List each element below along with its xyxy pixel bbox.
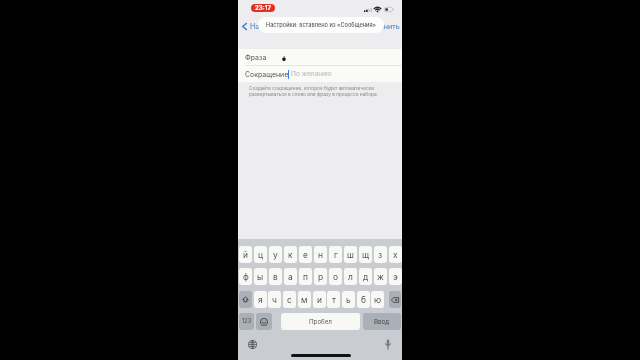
staticText: с [287, 295, 292, 305]
staticText: м [301, 295, 308, 305]
staticText: ч [272, 295, 277, 305]
staticText: х [393, 250, 398, 260]
staticText: в [273, 272, 278, 282]
staticText: Настройки [250, 22, 289, 31]
button[interactable]: д [359, 268, 372, 285]
button[interactable]: ш [344, 246, 357, 263]
button[interactable]: б [357, 291, 370, 308]
staticText: з [378, 250, 383, 260]
staticText: По желанию [291, 70, 332, 78]
staticText: р [318, 272, 324, 282]
other: Back [242, 23, 247, 30]
button[interactable]: ф [239, 268, 252, 285]
staticText: ж [377, 272, 384, 282]
button[interactable]: ж [374, 268, 387, 285]
button[interactable]: ц [254, 246, 267, 263]
button[interactable]: ч [268, 291, 281, 308]
staticText: л [348, 272, 353, 282]
button[interactable]: й [239, 246, 252, 263]
button[interactable]: ь [342, 291, 355, 308]
staticText: н [318, 250, 323, 260]
staticText: Фраза [245, 53, 267, 61]
button[interactable]: с [283, 291, 296, 308]
button[interactable]: е [299, 246, 312, 263]
button[interactable]: п [299, 268, 312, 285]
button[interactable]: т [327, 291, 340, 308]
button[interactable]: Сокращение [238, 66, 402, 82]
button[interactable]: Shift [239, 291, 252, 308]
staticText: 23:17 [255, 4, 271, 12]
staticText: 123 [242, 318, 252, 325]
staticText: д [363, 272, 369, 282]
staticText: я [258, 295, 263, 305]
button[interactable]: к [284, 246, 297, 263]
staticText: и [317, 295, 322, 305]
button[interactable]: Dictation [382, 339, 393, 350]
button[interactable]: х [389, 246, 402, 263]
button[interactable]: м [298, 291, 311, 308]
button[interactable]: Backspace [389, 291, 401, 308]
staticText: Пробел [309, 318, 332, 326]
button[interactable]: э [389, 268, 402, 285]
staticText: ц [258, 250, 264, 260]
button[interactable]: щ [359, 246, 372, 263]
button[interactable]: з [374, 246, 387, 263]
staticText: ш [347, 250, 354, 260]
button[interactable]: а [284, 268, 297, 285]
button[interactable]: г [329, 246, 342, 263]
staticText: ь [346, 295, 351, 305]
button[interactable]: и [313, 291, 326, 308]
staticText: г [334, 250, 338, 260]
staticText: Ввод [374, 318, 390, 326]
staticText: к [288, 250, 293, 260]
button[interactable]: Emoji [256, 313, 272, 330]
button[interactable]: р [314, 268, 327, 285]
staticText: Настройки: вставлено из «Сообщения» [266, 22, 376, 29]
staticText: й [243, 250, 248, 260]
button[interactable]: Back [238, 18, 288, 36]
staticText: щ [362, 250, 370, 260]
button[interactable]: н [314, 246, 327, 263]
staticText: б [361, 295, 366, 305]
staticText: Сокращение [245, 70, 289, 78]
staticText: Сохранить [362, 22, 400, 31]
staticText: а [288, 272, 293, 282]
button[interactable]: Change keyboard [247, 339, 258, 350]
button[interactable]: я [254, 291, 267, 308]
staticText: ю [374, 295, 382, 305]
button[interactable]: л [344, 268, 357, 285]
staticText: Создайте сокращение, которое будет автом… [249, 85, 386, 97]
button[interactable]: Настройки: вставлено из «Сообщения» [258, 17, 384, 33]
staticText: у [273, 250, 278, 260]
button[interactable]: в [269, 268, 282, 285]
button[interactable]: Сохранить [356, 18, 402, 36]
button[interactable]: Фраза [238, 49, 402, 65]
button[interactable]: Пробел [281, 313, 360, 330]
staticText: ф [243, 272, 249, 282]
button[interactable]: ы [254, 268, 267, 285]
button[interactable]: Ввод [363, 313, 401, 330]
button[interactable]: ю [371, 291, 384, 308]
button[interactable]: 123 [239, 313, 254, 330]
staticText: е [303, 250, 308, 260]
staticText: ы [257, 272, 264, 282]
staticText: п [303, 272, 308, 282]
staticText: э [393, 272, 398, 282]
button[interactable]: у [269, 246, 282, 263]
button[interactable]: о [329, 268, 342, 285]
staticText: о [333, 272, 339, 282]
staticText: т [332, 295, 336, 305]
